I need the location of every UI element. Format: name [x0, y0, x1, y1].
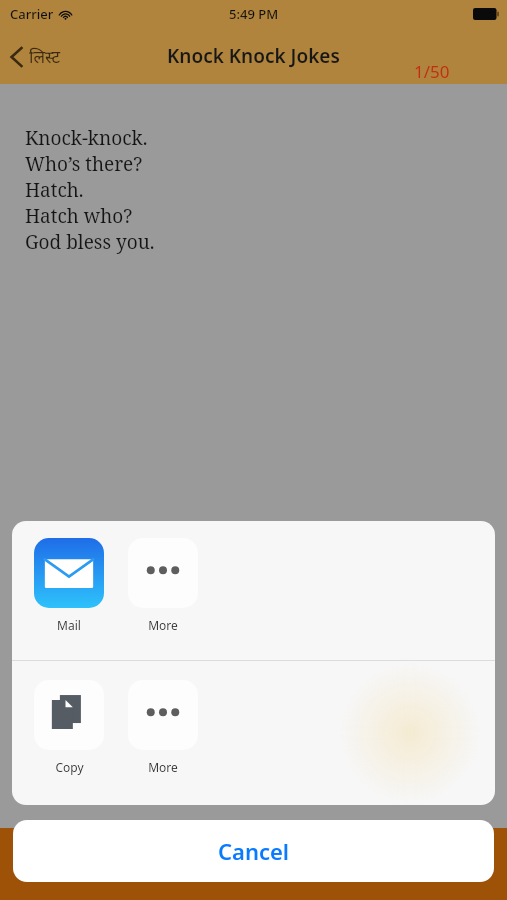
- staticText: Copy: [55, 759, 84, 775]
- other: Mail: [34, 538, 104, 608]
- button[interactable]: Cancel: [13, 820, 494, 882]
- staticText: God bless you.: [25, 229, 155, 255]
- other: More: [128, 538, 198, 608]
- staticText: Hatch.: [25, 177, 84, 203]
- staticText: More: [148, 759, 178, 775]
- staticText: More: [148, 617, 178, 633]
- staticText: Knock Knock Jokes: [167, 43, 340, 69]
- button[interactable]: Back: [10, 45, 61, 68]
- staticText: लिस्ट: [29, 45, 61, 68]
- staticText: Hatch who?: [25, 203, 133, 229]
- button[interactable]: Copy: [34, 680, 104, 775]
- staticText: Knock-knock.: [25, 125, 148, 151]
- staticText: Mail: [57, 617, 81, 633]
- staticText: Carrier: [10, 5, 54, 23]
- staticText: Who’s there?: [25, 151, 143, 177]
- button[interactable]: Mail: [34, 538, 104, 633]
- other: Back: [10, 46, 23, 68]
- other: More: [128, 680, 198, 750]
- button[interactable]: More: [128, 680, 198, 775]
- staticText: 5:49 PM: [229, 5, 279, 23]
- button[interactable]: More: [128, 538, 198, 633]
- staticText: Cancel: [218, 836, 290, 866]
- other: Copy: [34, 680, 104, 750]
- staticText: 1/50: [414, 60, 450, 83]
